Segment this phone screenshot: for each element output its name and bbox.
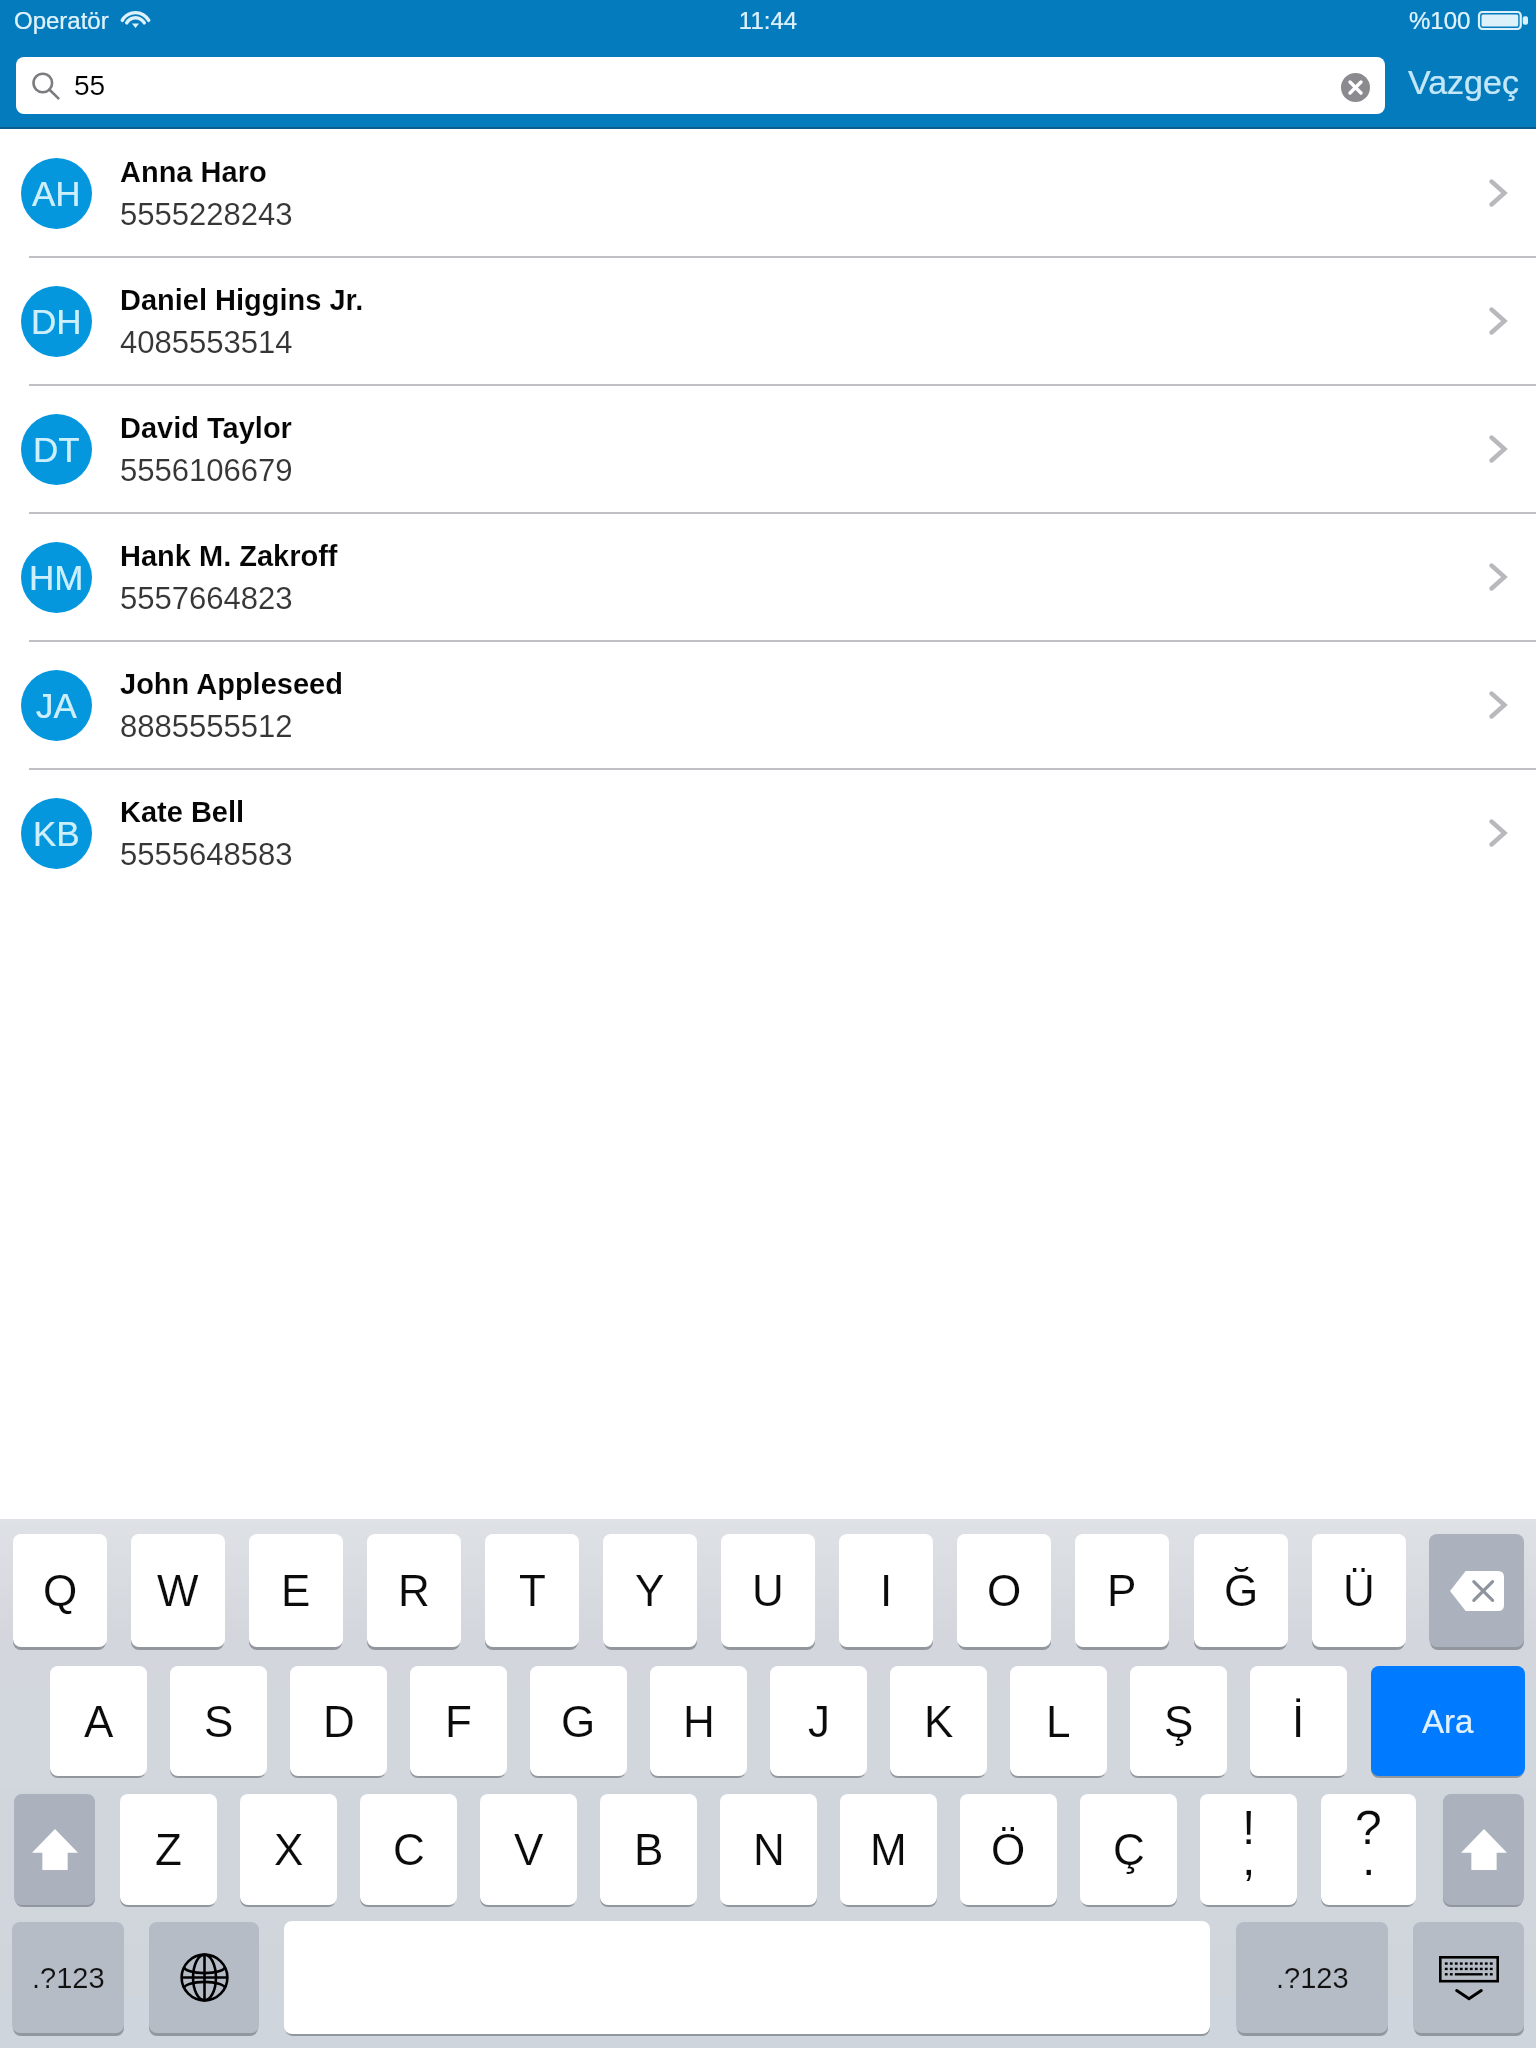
- button[interactable]: N: [720, 1794, 817, 1905]
- staticText: Z: [155, 1825, 182, 1874]
- staticText: Ö: [991, 1825, 1026, 1874]
- staticText: P: [1107, 1566, 1137, 1615]
- button[interactable]: Ç: [1080, 1794, 1177, 1905]
- staticText: J: [808, 1697, 830, 1746]
- button[interactable]: Change keyboard: [149, 1922, 259, 2033]
- button[interactable]: V: [480, 1794, 577, 1905]
- staticText: Anna Haro: [120, 156, 267, 188]
- button[interactable]: I: [839, 1534, 933, 1647]
- button[interactable]: .?123: [12, 1922, 124, 2033]
- button[interactable]: !: [1200, 1794, 1297, 1905]
- button[interactable]: M: [840, 1794, 937, 1905]
- staticText: S: [204, 1697, 234, 1746]
- staticText: I: [880, 1566, 893, 1615]
- button[interactable]: Clear text: [1341, 73, 1370, 102]
- staticText: Hank M. Zakroff: [120, 540, 338, 572]
- staticText: Q: [43, 1566, 78, 1615]
- staticText: 5557664823: [120, 581, 293, 616]
- staticText: C: [393, 1825, 425, 1874]
- staticText: Ç: [1113, 1825, 1145, 1874]
- button[interactable]: Ü: [1312, 1534, 1406, 1647]
- staticText: %100: [1409, 7, 1471, 34]
- button[interactable]: 55: [16, 57, 1385, 114]
- button[interactable]: AH: [0, 129, 1536, 257]
- button[interactable]: X: [240, 1794, 337, 1905]
- button[interactable]: JA: [0, 641, 1536, 769]
- button[interactable]: T: [485, 1534, 579, 1647]
- button[interactable]: Vazgeç: [1396, 57, 1530, 114]
- button[interactable]: J: [770, 1666, 867, 1776]
- staticText: W: [157, 1566, 199, 1615]
- button[interactable]: S: [170, 1666, 267, 1776]
- staticText: Ğ: [1224, 1566, 1259, 1615]
- staticText: V: [514, 1825, 544, 1874]
- button[interactable]: Search: [1371, 1666, 1525, 1776]
- button[interactable]: G: [530, 1666, 627, 1776]
- button[interactable]: H: [650, 1666, 747, 1776]
- staticText: .?123: [32, 1962, 105, 1994]
- button[interactable]: Ö: [960, 1794, 1057, 1905]
- staticText: 4085553514: [120, 325, 293, 360]
- staticText: KB: [33, 814, 80, 853]
- button[interactable]: Q: [13, 1534, 107, 1647]
- staticText: Daniel Higgins Jr.: [120, 284, 364, 316]
- staticText: 55: [74, 70, 106, 101]
- staticText: !: [1242, 1801, 1256, 1855]
- staticText: Operatör: [14, 7, 109, 34]
- staticText: K: [924, 1697, 954, 1746]
- button[interactable]: W: [131, 1534, 225, 1647]
- button[interactable]: P: [1075, 1534, 1169, 1647]
- button[interactable]: DH: [0, 257, 1536, 385]
- button[interactable]: Shift: [1443, 1794, 1524, 1905]
- staticText: F: [445, 1697, 472, 1746]
- staticText: Y: [635, 1566, 665, 1615]
- button[interactable]: K: [890, 1666, 987, 1776]
- button[interactable]: DT: [0, 385, 1536, 513]
- button[interactable]: B: [600, 1794, 697, 1905]
- staticText: D: [323, 1697, 355, 1746]
- staticText: X: [274, 1825, 304, 1874]
- button[interactable]: O: [957, 1534, 1051, 1647]
- staticText: Ü: [1343, 1566, 1375, 1615]
- staticText: 11:44: [0, 7, 1536, 34]
- button[interactable]: HM: [0, 513, 1536, 641]
- button[interactable]: C: [360, 1794, 457, 1905]
- staticText: John Appleseed: [120, 668, 343, 700]
- button[interactable]: Shift: [14, 1794, 95, 1905]
- staticText: N: [753, 1825, 785, 1874]
- staticText: Vazgeç: [1408, 63, 1519, 101]
- button[interactable]: Ğ: [1194, 1534, 1288, 1647]
- staticText: U: [752, 1566, 784, 1615]
- button[interactable]: L: [1010, 1666, 1107, 1776]
- button[interactable]: KB: [0, 769, 1536, 897]
- button[interactable]: U: [721, 1534, 815, 1647]
- button[interactable]: D: [290, 1666, 387, 1776]
- staticText: .: [1362, 1832, 1376, 1886]
- button[interactable]: Backspace: [1429, 1534, 1524, 1647]
- staticText: Kate Bell: [120, 796, 245, 828]
- staticText: Ş: [1164, 1697, 1194, 1746]
- staticText: DH: [31, 302, 82, 341]
- staticText: Ara: [1422, 1703, 1474, 1740]
- staticText: JA: [36, 686, 77, 725]
- staticText: DT: [33, 430, 80, 469]
- button[interactable]: İ: [1250, 1666, 1347, 1776]
- staticText: 5555228243: [120, 197, 293, 232]
- button[interactable]: Hide keyboard: [1413, 1922, 1524, 2033]
- button[interactable]: Z: [120, 1794, 217, 1905]
- staticText: 8885555512: [120, 709, 293, 744]
- staticText: 5555648583: [120, 837, 293, 872]
- button[interactable]: E: [249, 1534, 343, 1647]
- button[interactable]: .?123: [1236, 1922, 1388, 2033]
- button[interactable]: R: [367, 1534, 461, 1647]
- staticText: .?123: [1276, 1962, 1349, 1994]
- button[interactable]: A: [50, 1666, 147, 1776]
- staticText: G: [561, 1697, 596, 1746]
- button[interactable]: ?: [1321, 1794, 1416, 1905]
- button[interactable]: Ş: [1130, 1666, 1227, 1776]
- staticText: T: [519, 1566, 546, 1615]
- button[interactable]: F: [410, 1666, 507, 1776]
- staticText: E: [281, 1566, 311, 1615]
- button[interactable]: Y: [603, 1534, 697, 1647]
